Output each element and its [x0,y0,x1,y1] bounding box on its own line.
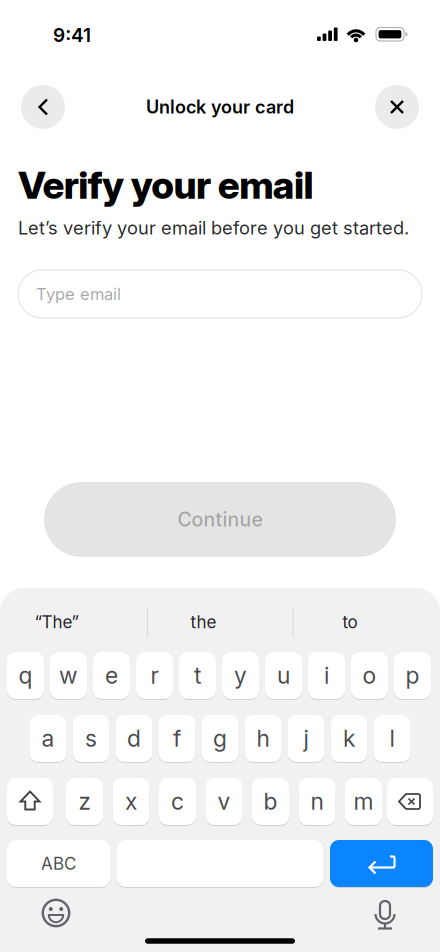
staticText: r [150,659,158,692]
staticText: w [59,659,78,692]
staticText: the [190,610,216,634]
staticText: ABC [41,851,76,876]
staticText: y [234,659,247,692]
button[interactable]: u [265,652,302,699]
button[interactable]: g [201,715,238,762]
button[interactable]: Dictation [363,893,407,937]
button[interactable]: “The” [0,597,126,647]
button[interactable]: c [159,778,196,825]
button[interactable]: the [133,597,273,647]
staticText: k [343,722,355,755]
button[interactable]: q [7,652,44,699]
button[interactable]: j [287,715,324,762]
button[interactable]: m [345,778,382,825]
button[interactable]: Delete [387,778,433,825]
button[interactable]: Continue [44,482,396,557]
staticText: p [405,659,419,692]
staticText: h [256,722,269,755]
staticText: l [389,722,394,755]
staticText: o [362,659,376,692]
button[interactable]: a [29,715,66,762]
button[interactable]: d [115,715,152,762]
staticText: e [105,659,118,692]
button[interactable]: Return [330,840,433,887]
staticText: to [342,610,357,634]
staticText: z [78,785,90,818]
button[interactable]: Emoji [34,891,78,935]
button[interactable]: s [72,715,109,762]
staticText: g [213,722,227,755]
button[interactable]: f [158,715,195,762]
button[interactable]: Type email [18,270,422,318]
button[interactable]: y [222,652,259,699]
button[interactable]: i [308,652,345,699]
staticText: 9:41 [53,22,91,48]
button[interactable]: Shift [7,778,53,825]
staticText: d [127,722,141,755]
button[interactable]: l [373,715,410,762]
staticText: Let’s verify your email before you get s… [18,215,409,241]
button[interactable]: r [136,652,173,699]
staticText: “The” [34,610,78,634]
staticText: m [353,785,373,818]
button[interactable]: to [280,597,420,647]
staticText: n [310,785,323,818]
staticText: Type email [36,282,121,306]
staticText: i [324,659,329,692]
staticText: x [125,785,137,818]
button[interactable]: ABC [7,840,110,887]
staticText: a [41,722,54,755]
button[interactable]: e [93,652,130,699]
button[interactable]: b [252,778,289,825]
button[interactable]: x [112,778,149,825]
button[interactable]: o [351,652,388,699]
staticText: Verify your email [18,158,313,212]
staticText: Unlock your card [146,94,294,120]
button[interactable]: w [50,652,87,699]
button[interactable]: n [298,778,335,825]
staticText: s [85,722,97,755]
button[interactable]: v [205,778,242,825]
staticText: f [173,722,181,755]
staticText: c [171,785,184,818]
button[interactable]: Back [21,85,65,129]
button[interactable]: Close [375,85,419,129]
button[interactable]: k [330,715,367,762]
staticText: t [194,659,201,692]
staticText: q [18,659,32,692]
staticText: b [263,785,277,818]
staticText: Continue [177,506,262,533]
button[interactable]: p [394,652,431,699]
button[interactable]: z [66,778,103,825]
staticText: j [303,722,308,755]
button[interactable]: t [179,652,216,699]
staticText: u [277,659,290,692]
staticText: v [217,785,230,818]
button[interactable]: h [244,715,281,762]
